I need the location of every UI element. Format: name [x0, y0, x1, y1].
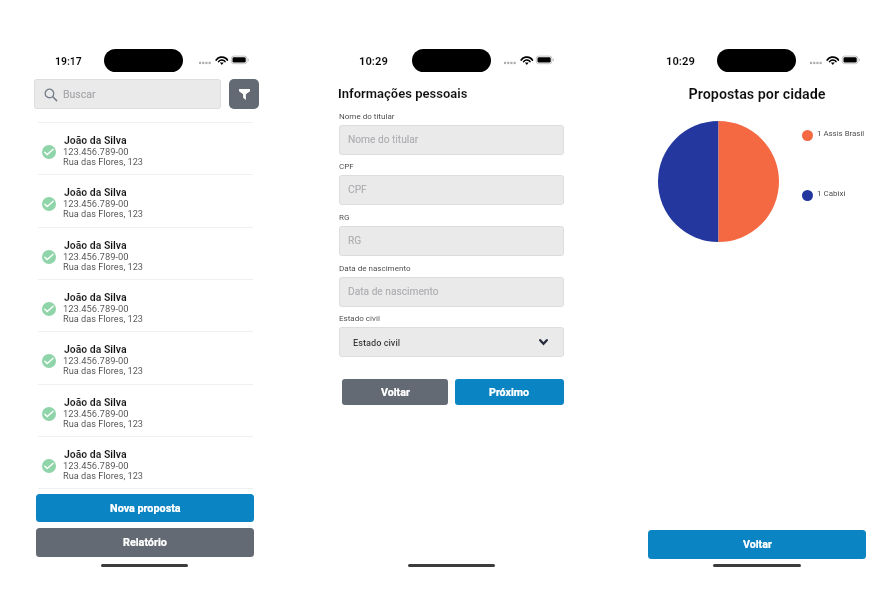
staticText: Rua das Flores, 123 [63, 208, 143, 219]
staticText: Estado civil [339, 314, 380, 323]
button[interactable]: João da Silva [34, 384, 254, 436]
button[interactable]: João da Silva [34, 122, 254, 174]
staticText: 1 Assis Brasil [817, 129, 865, 138]
button[interactable]: Filtrar [229, 79, 259, 109]
staticText: 123.456.789-00 [63, 460, 129, 471]
staticText: CPF [348, 184, 367, 196]
staticText: Buscar [63, 88, 96, 100]
staticText: João da Silva [64, 291, 127, 303]
button[interactable]: Buscar [34, 79, 221, 109]
staticText: RG [339, 213, 350, 222]
staticText: 10:29 [666, 55, 695, 68]
staticText: Nome do titular [339, 112, 395, 121]
staticText: 123.456.789-00 [63, 198, 129, 209]
staticText: Rua das Flores, 123 [63, 470, 143, 481]
staticText: CPF [339, 162, 354, 171]
staticText: João da Silva [64, 239, 127, 251]
staticText: RG [348, 235, 362, 247]
staticText: Rua das Flores, 123 [63, 156, 143, 167]
button[interactable]: Data de nascimento [339, 277, 564, 307]
staticText: 1 Cabixi [817, 189, 846, 198]
staticText: 123.456.789-00 [63, 355, 129, 366]
staticText: Rua das Flores, 123 [63, 313, 143, 324]
button[interactable]: João da Silva [34, 279, 254, 331]
button[interactable]: João da Silva [34, 331, 254, 383]
button[interactable]: Relatório [36, 528, 254, 557]
staticText: Rua das Flores, 123 [63, 365, 143, 376]
staticText: Voltar [743, 538, 772, 551]
staticText: Voltar [381, 386, 410, 399]
button[interactable]: Nova proposta [36, 494, 254, 522]
staticText: João da Silva [64, 448, 127, 460]
button[interactable]: Nome do titular [339, 125, 564, 155]
button[interactable]: Próximo [455, 379, 564, 405]
button[interactable]: Voltar [342, 379, 448, 405]
staticText: João da Silva [64, 186, 127, 198]
staticText: Estado civil [353, 337, 401, 348]
staticText: 123.456.789-00 [63, 146, 129, 157]
staticText: 123.456.789-00 [63, 303, 129, 314]
staticText: Rua das Flores, 123 [63, 261, 143, 272]
staticText: Data de nascimento [339, 264, 411, 273]
staticText: 19:17 [55, 55, 82, 67]
staticText: 10:29 [359, 55, 388, 68]
button[interactable]: Voltar [648, 530, 866, 559]
button[interactable]: João da Silva [34, 174, 254, 226]
button[interactable]: CPF [339, 175, 564, 205]
staticText: 123.456.789-00 [63, 251, 129, 262]
staticText: Próximo [489, 386, 530, 399]
staticText: Data de nascimento [348, 286, 439, 298]
button[interactable]: João da Silva [34, 436, 254, 488]
staticText: Nova proposta [110, 502, 181, 515]
staticText: João da Silva [64, 396, 127, 408]
staticText: 123.456.789-00 [63, 408, 129, 419]
staticText: Rua das Flores, 123 [63, 418, 143, 429]
button[interactable]: João da Silva [34, 227, 254, 279]
staticText: João da Silva [64, 134, 127, 146]
staticText: Relatório [123, 536, 167, 549]
staticText: Nome do titular [348, 134, 419, 146]
staticText: Informações pessoais [338, 86, 468, 101]
staticText: Propostas por cidade [648, 86, 866, 103]
staticText: João da Silva [64, 343, 127, 355]
button[interactable]: RG [339, 226, 564, 256]
button[interactable]: Estado civil [339, 327, 564, 357]
